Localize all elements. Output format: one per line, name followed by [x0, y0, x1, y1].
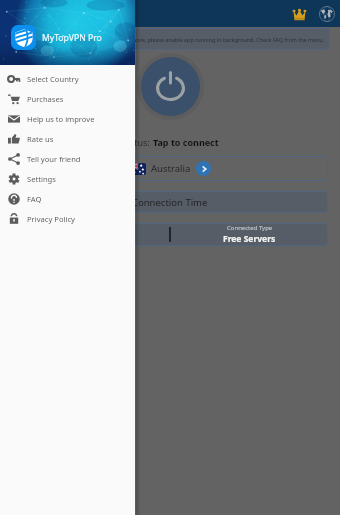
button[interactable]: Tell your friend: [0, 149, 135, 169]
staticText: Privacy Policy: [27, 214, 75, 224]
button[interactable]: Purchases: [0, 89, 135, 109]
staticText: Status:: [121, 136, 153, 148]
staticText: Rate us: [27, 134, 54, 144]
staticText: Australia: [151, 162, 191, 175]
button[interactable]: To work, please enable app running in ba…: [10, 28, 330, 50]
staticText: Free Servers: [223, 233, 276, 245]
button[interactable]: Select Country: [0, 69, 135, 89]
button[interactable]: Change server: [315, 2, 339, 26]
button[interactable]: Privacy Policy: [0, 209, 135, 229]
staticText: FAQ: [27, 194, 42, 204]
staticText: Settings: [27, 174, 56, 184]
button[interactable]: FAQ: [0, 189, 135, 209]
button[interactable]: Connect: [137, 53, 204, 120]
button[interactable]: Australia: [12, 156, 328, 181]
staticText: Connected Type: [227, 224, 273, 232]
staticText: Tap to connect: [153, 136, 219, 148]
staticText: Purchases: [27, 94, 64, 104]
button[interactable]: Change country: [196, 161, 211, 176]
button[interactable]: Rate us: [0, 129, 135, 149]
staticText: MyTopVPN Pro: [42, 32, 102, 44]
staticText: Connection Time: [132, 196, 208, 209]
button[interactable]: Premium: [287, 2, 311, 26]
staticText: Select Country: [27, 74, 79, 84]
staticText: Tell your friend: [27, 154, 81, 164]
staticText: To work, please enable app running in ba…: [125, 36, 325, 43]
staticText: Help us to improve: [27, 114, 95, 124]
button[interactable]: Settings: [0, 169, 135, 189]
button[interactable]: Help us to improve: [0, 109, 135, 129]
